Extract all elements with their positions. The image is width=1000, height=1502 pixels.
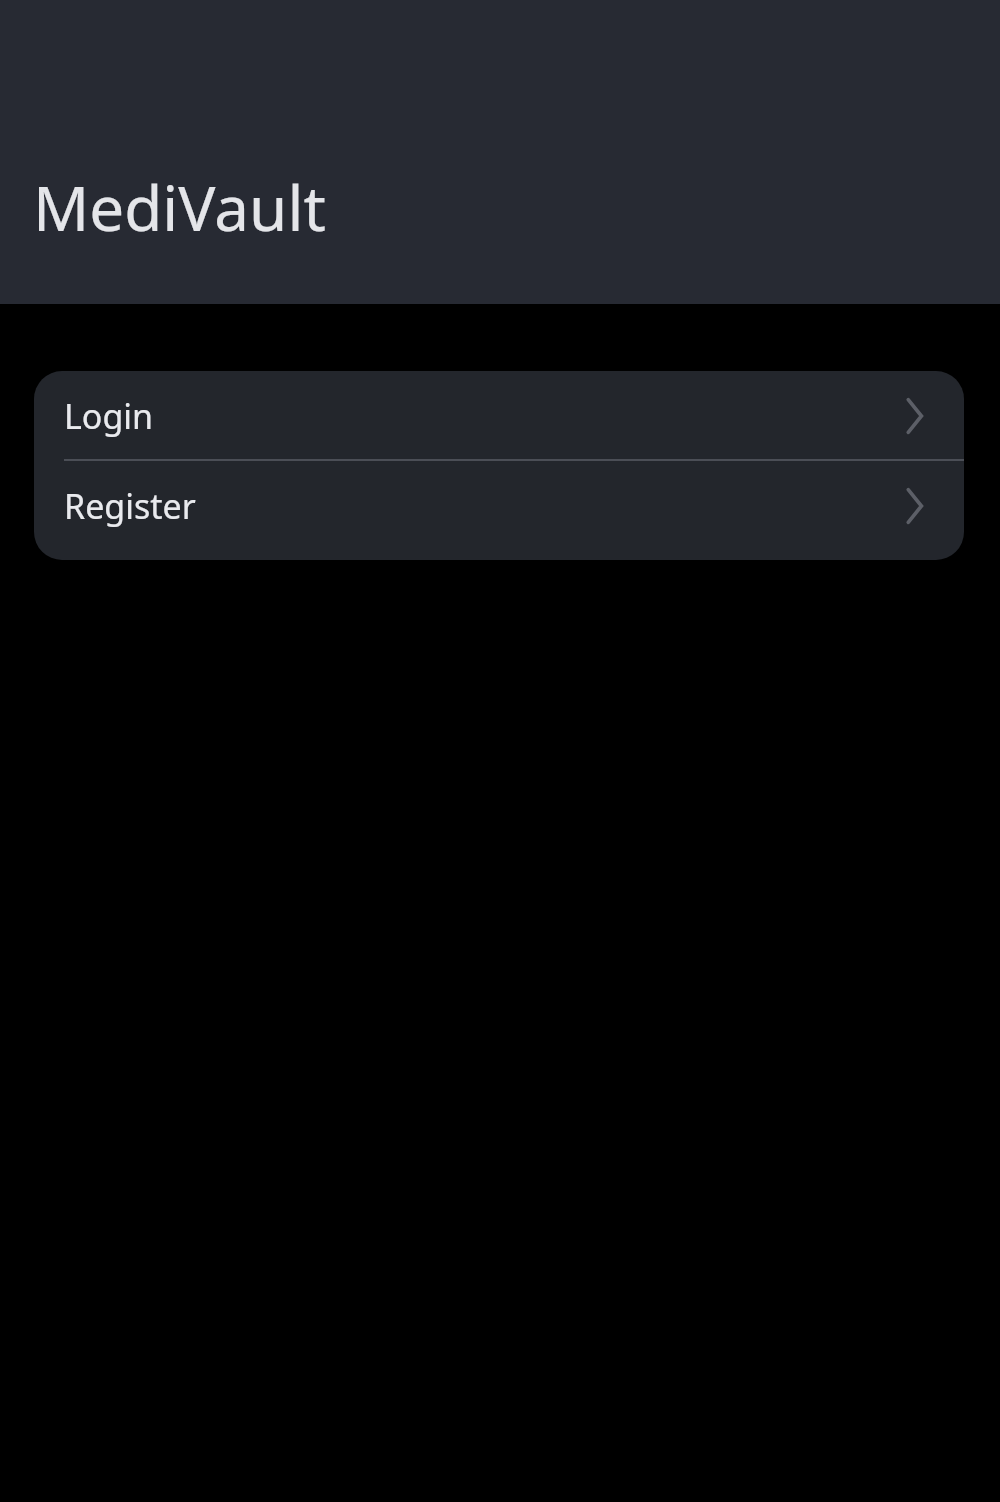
staticText: Register [64, 483, 894, 529]
staticText: Login [64, 393, 894, 439]
button[interactable]: Register [34, 461, 964, 560]
button[interactable]: Login [34, 371, 964, 461]
other: Login [894, 396, 934, 436]
staticText: MediVault [33, 165, 326, 249]
other: Register [894, 486, 934, 526]
